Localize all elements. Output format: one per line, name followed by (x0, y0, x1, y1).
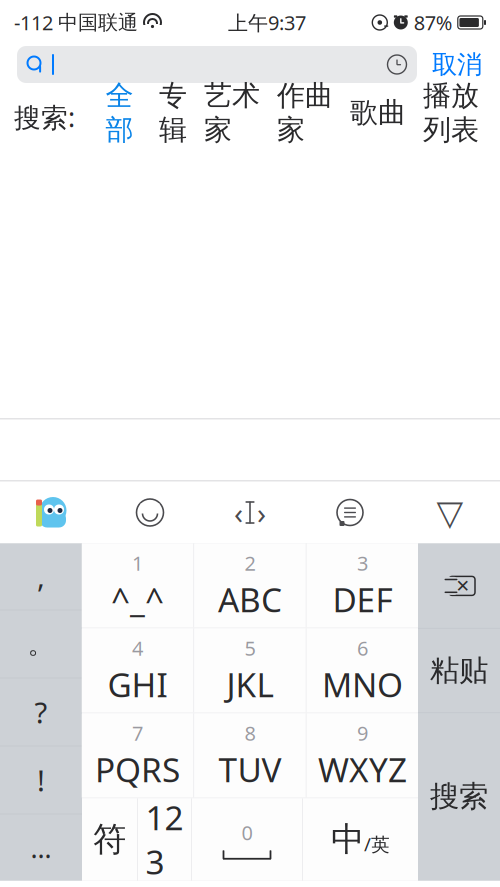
staticText: 6 (357, 635, 368, 661)
staticText: 全部 (105, 78, 133, 147)
staticText: WXYZ (318, 747, 407, 791)
staticText: 作曲家 (277, 78, 333, 147)
staticText: 中 (331, 819, 364, 860)
staticText: 搜索: (14, 99, 75, 135)
staticText: 专辑 (159, 78, 187, 147)
button[interactable]: 空格 (192, 798, 302, 880)
staticText: GHI (107, 662, 167, 706)
staticText: TUV (218, 747, 281, 791)
button[interactable]: 播放列表 (406, 78, 479, 156)
staticText: 艺术家 (204, 78, 260, 147)
staticText: ! (37, 760, 45, 799)
staticText: /英 (364, 832, 390, 856)
staticText: 符 (93, 819, 126, 860)
button[interactable]: 7 (82, 713, 193, 797)
button[interactable]: 粘贴 (418, 628, 500, 712)
staticText: 4 (132, 635, 143, 661)
button[interactable]: 收起键盘 (400, 481, 500, 543)
staticText: PQRS (95, 747, 180, 791)
button[interactable]: ? (0, 678, 82, 746)
button[interactable]: 艺术家 (187, 78, 260, 156)
staticText: 1 (132, 550, 143, 576)
staticText: … (30, 830, 51, 866)
staticText: 取消 (432, 49, 482, 80)
button[interactable]: 搜索 (418, 713, 500, 880)
staticText: 87% (414, 9, 453, 36)
staticText: 8 (244, 720, 255, 746)
staticText: 7 (132, 720, 143, 746)
staticText: 5 (244, 635, 255, 661)
button[interactable]: 3 (307, 543, 418, 627)
staticText: 搜索 (430, 779, 488, 815)
button[interactable]: 全部 (75, 78, 142, 156)
staticText: 中国联通 (58, 10, 138, 35)
button[interactable]: 输入法 (0, 481, 100, 543)
button[interactable]: 123 (138, 798, 191, 880)
button[interactable]: 移动光标 (200, 481, 300, 543)
button[interactable]: 8 (194, 713, 306, 797)
staticText: ^_^ (111, 577, 164, 621)
button[interactable]: 歌曲 (333, 96, 406, 138)
staticText: JKL (226, 662, 273, 706)
staticText: 0 (241, 819, 252, 846)
button[interactable]: 6 (307, 628, 418, 712)
staticText: ? (34, 692, 47, 731)
button[interactable]: 语音 (300, 481, 400, 543)
staticText: 上午9:37 (228, 9, 306, 36)
staticText: -112 (14, 9, 53, 36)
staticText: MNO (322, 662, 403, 706)
staticText: 123 (145, 795, 183, 884)
staticText: 播放列表 (423, 78, 479, 147)
staticText: › (257, 493, 266, 532)
button[interactable]: 专辑 (142, 78, 187, 156)
staticText: 。 (27, 628, 54, 660)
button[interactable] (17, 46, 417, 83)
button[interactable]: 9 (307, 713, 418, 797)
button[interactable]: 中英文切换 (303, 798, 418, 880)
button[interactable]: 1 (82, 543, 193, 627)
button[interactable]: 。 (0, 610, 82, 678)
staticText: ✕ (455, 576, 470, 596)
button[interactable]: 4 (82, 628, 193, 712)
staticText: ABC (218, 577, 282, 621)
staticText: DEF (332, 577, 392, 621)
staticText: ▽ (436, 493, 463, 532)
button[interactable]: , (0, 542, 82, 610)
staticText: , (37, 556, 45, 595)
button[interactable]: 删除 (418, 544, 500, 628)
staticText: 粘贴 (430, 652, 488, 688)
button[interactable]: 表情 (100, 481, 200, 543)
button[interactable]: 取消 (417, 46, 497, 83)
staticText: 歌曲 (350, 96, 406, 130)
button[interactable]: 作曲家 (260, 78, 333, 156)
button[interactable]: … (0, 814, 82, 882)
button[interactable]: 5 (194, 628, 306, 712)
staticText: 9 (357, 720, 368, 746)
button[interactable]: 2 (194, 543, 306, 627)
staticText: 3 (357, 550, 368, 576)
staticText: ‹ (234, 493, 243, 532)
button[interactable]: 符 (82, 798, 137, 880)
button[interactable]: ! (0, 746, 82, 814)
staticText: 2 (244, 550, 255, 576)
